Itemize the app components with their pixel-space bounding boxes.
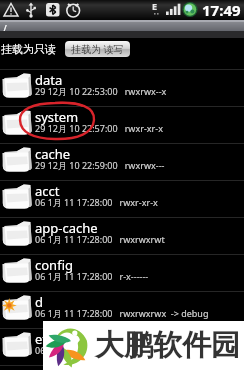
staticText: config <box>35 256 73 274</box>
staticText: / <box>3 22 7 31</box>
button[interactable]: etc <box>0 329 244 366</box>
staticText: etc <box>35 330 54 348</box>
button[interactable]: app-cache <box>0 218 244 255</box>
staticText: E <box>152 0 158 12</box>
button[interactable]: data <box>0 70 244 107</box>
button[interactable]: 挂载为 读写 <box>65 41 130 57</box>
staticText: 06 1月 11 17:28:00 rwxrwxrwx -> debug <box>35 307 209 319</box>
staticText: 29 12月 10 22:59:00 rwxrwx--- <box>35 159 165 171</box>
staticText: cache <box>35 145 71 163</box>
staticText: 挂载为 读写 <box>71 42 124 56</box>
staticText: d <box>35 293 43 311</box>
staticText: 06 1月 11 17:28:00 rwxrwxrwx -> /syste <box>35 344 207 356</box>
staticText: system <box>35 108 79 126</box>
button[interactable]: d <box>0 292 244 329</box>
staticText: app-cache <box>35 219 98 237</box>
button[interactable]: cache <box>0 144 244 181</box>
staticText: 06 1月 11 17:28:00 rwxrwxrwt <box>35 233 165 245</box>
staticText: acct <box>35 182 60 200</box>
staticText: 06 1月 11 17:28:00 r-x------ <box>35 270 149 282</box>
staticText: 17:49 <box>202 0 241 20</box>
staticText: 29 12月 10 22:53:00 rwxrwx--x <box>35 85 167 97</box>
staticText: 06 1月 11 17:28:00 rwxr-xr-x <box>35 196 158 208</box>
button[interactable]: acct <box>0 181 244 218</box>
staticText: 29 12月 10 22:57:00 rwxr-xr-x <box>35 122 163 134</box>
staticText: 挂载为只读 <box>1 42 56 56</box>
button[interactable]: system <box>0 107 244 144</box>
staticText: data <box>35 71 63 89</box>
button[interactable]: config <box>0 255 244 292</box>
staticText: 大鹏软件园 <box>95 327 240 364</box>
